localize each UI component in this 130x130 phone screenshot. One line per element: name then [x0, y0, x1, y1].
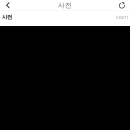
- button[interactable]: 사전: [0, 14, 12, 23]
- staticText: 사전: [58, 1, 72, 9]
- button[interactable]: Back: [0, 0, 16, 11]
- staticText: 사전: [2, 14, 12, 20]
- staticText: 더보기: [116, 15, 128, 20]
- button[interactable]: Reload: [114, 0, 130, 11]
- button[interactable]: 더보기: [116, 15, 130, 22]
